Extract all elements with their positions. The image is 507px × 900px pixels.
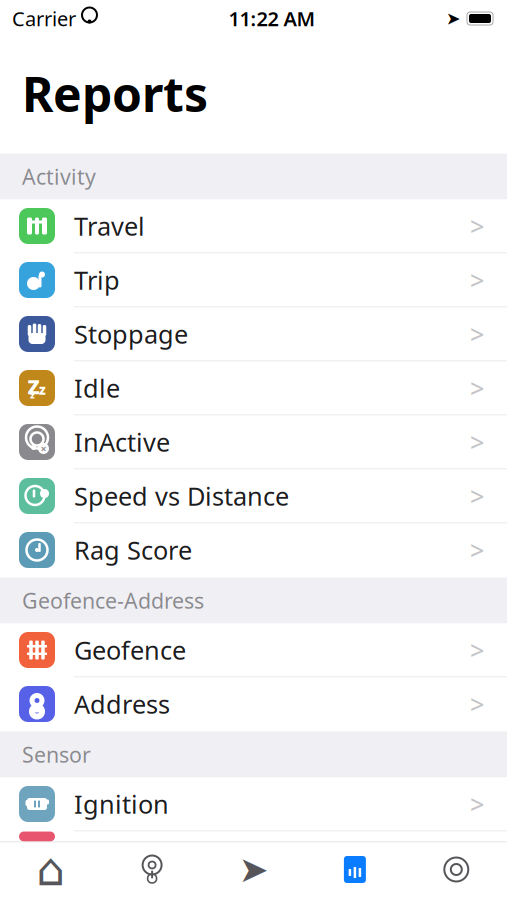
staticText: 11:22 AM [228, 5, 315, 32]
staticText: z [30, 389, 35, 401]
staticText: > [470, 371, 484, 405]
staticText: > [470, 787, 484, 821]
button[interactable]: Speed vs Distance [0, 469, 507, 523]
button[interactable]: Address [0, 677, 507, 731]
staticText: z [39, 381, 46, 398]
button[interactable]: Places [101, 842, 203, 896]
staticText: > [470, 263, 484, 297]
button[interactable]: Trip [0, 253, 507, 307]
staticText: Carrier [12, 5, 76, 32]
staticText: Idle [74, 371, 120, 405]
staticText: × [40, 441, 46, 456]
staticText: Reports [22, 62, 208, 125]
staticText: > [470, 633, 484, 667]
staticText: Trip [74, 263, 120, 297]
staticText: Geofence [74, 633, 186, 667]
staticText: > [470, 209, 484, 243]
staticText: > [470, 687, 484, 721]
staticText: Travel [74, 209, 145, 243]
button[interactable] [0, 831, 507, 841]
button[interactable]: Stoppage [0, 307, 507, 361]
staticText: Address [74, 687, 170, 721]
staticText: Speed vs Distance [74, 479, 289, 513]
staticText: ➤ [238, 849, 268, 890]
staticText: Geofence-Address [22, 586, 204, 615]
button[interactable]: Geofence [0, 623, 507, 677]
staticText: Ignition [74, 787, 169, 821]
button[interactable]: Settings [406, 842, 507, 896]
button[interactable]: Track [203, 842, 304, 896]
button[interactable]: Travel [0, 199, 507, 253]
staticText: > [470, 317, 484, 351]
staticText: ➤ [446, 9, 461, 28]
staticText: > [470, 533, 484, 567]
staticText: InActive [74, 425, 170, 459]
button[interactable]: Z [0, 361, 507, 415]
staticText: Rag Score [74, 533, 192, 567]
staticText: Stoppage [74, 317, 188, 351]
button[interactable]: × [0, 415, 507, 469]
staticText: > [470, 425, 484, 459]
button[interactable]: Ignition [0, 777, 507, 831]
staticText: Activity [22, 162, 96, 191]
button[interactable]: Reports [304, 842, 406, 896]
staticText: > [470, 479, 484, 513]
staticText: Sensor [22, 740, 91, 769]
button[interactable]: Rag Score [0, 523, 507, 577]
button[interactable]: Home [0, 842, 101, 896]
staticText: ⌂ [36, 844, 65, 895]
staticText: Z [27, 373, 39, 400]
